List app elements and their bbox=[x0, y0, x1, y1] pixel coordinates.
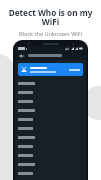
button[interactable] bbox=[18, 63, 83, 76]
button[interactable] bbox=[15, 106, 86, 115]
button[interactable] bbox=[15, 124, 86, 133]
staticText: Detect Who is on my WiFi bbox=[4, 7, 97, 27]
button[interactable] bbox=[15, 133, 86, 142]
button[interactable] bbox=[15, 88, 86, 97]
button[interactable] bbox=[15, 79, 86, 88]
button[interactable] bbox=[15, 97, 86, 106]
button[interactable] bbox=[15, 115, 86, 124]
button[interactable]: Back bbox=[18, 52, 25, 59]
button[interactable] bbox=[15, 169, 86, 178]
button[interactable] bbox=[15, 142, 86, 151]
staticText: Block the Unknown WiFi connected from my… bbox=[16, 30, 85, 45]
button[interactable] bbox=[15, 151, 86, 160]
button[interactable] bbox=[15, 160, 86, 169]
